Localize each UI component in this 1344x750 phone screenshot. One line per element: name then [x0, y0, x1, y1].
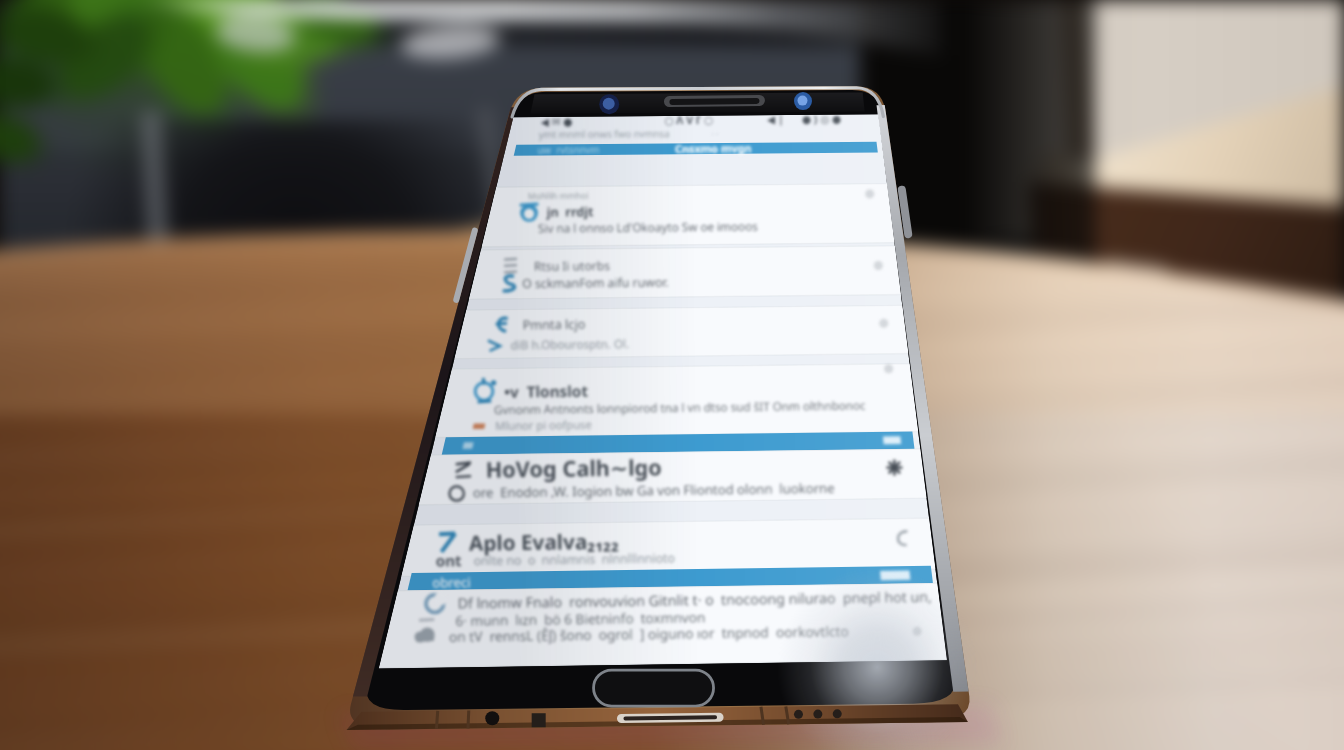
button[interactable]: Home button — [588, 668, 722, 708]
button[interactable]: Inbox message — [492, 188, 890, 250]
button[interactable]: Tab bar — [508, 160, 884, 184]
button[interactable]: Selected row — [446, 436, 910, 460]
button[interactable]: Account header — [512, 140, 882, 160]
button[interactable]: Notes section — [396, 596, 938, 660]
button[interactable]: Status bar — [520, 114, 880, 140]
button[interactable]: Details item — [470, 312, 898, 362]
button[interactable]: Transfer item — [458, 368, 904, 436]
button[interactable]: Highlighted action — [414, 574, 928, 596]
button[interactable]: Recent item — [482, 252, 894, 304]
button[interactable]: Aplo Evalva entry — [424, 520, 922, 574]
button[interactable]: HoVog Calhlgo entry — [440, 460, 914, 510]
